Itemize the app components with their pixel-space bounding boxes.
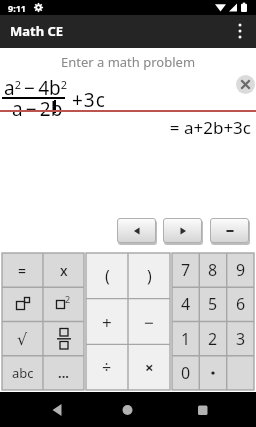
button[interactable]: 2 bbox=[43, 287, 84, 321]
staticText: 8 bbox=[208, 259, 218, 281]
button[interactable]: 9 bbox=[227, 253, 254, 287]
button[interactable]: 1 bbox=[172, 322, 199, 356]
button[interactable]: 7 bbox=[172, 253, 199, 287]
staticText: x bbox=[60, 261, 68, 280]
staticText: ... bbox=[58, 364, 69, 382]
staticText: 6 bbox=[236, 293, 246, 315]
staticText: − bbox=[144, 311, 154, 334]
button[interactable] bbox=[110, 392, 145, 427]
staticText: 5 bbox=[208, 293, 218, 315]
button[interactable]: + bbox=[86, 299, 128, 345]
staticText: 2 bbox=[208, 328, 218, 350]
button[interactable] bbox=[228, 19, 252, 43]
staticText: 9 bbox=[236, 259, 246, 281]
staticText: 4 bbox=[181, 293, 191, 315]
button[interactable] bbox=[210, 218, 249, 243]
button[interactable]: 2 bbox=[199, 322, 226, 356]
button[interactable]: 4 bbox=[172, 287, 199, 321]
staticText: 9:11 bbox=[8, 2, 26, 14]
staticText: 2 bbox=[65, 293, 71, 305]
staticText: a − 2b bbox=[12, 96, 63, 122]
button[interactable]: ... bbox=[43, 356, 84, 390]
staticText: 0 bbox=[181, 362, 191, 384]
button[interactable]: 8 bbox=[199, 253, 226, 287]
button[interactable] bbox=[2, 287, 43, 321]
button[interactable]: ( bbox=[86, 253, 128, 299]
staticText: × bbox=[145, 357, 154, 377]
staticText: = bbox=[18, 261, 27, 280]
staticText: +3c bbox=[72, 87, 106, 113]
staticText: ÷ bbox=[102, 356, 112, 378]
staticText: Enter a math problem bbox=[0, 53, 256, 71]
button[interactable]: 0 bbox=[172, 356, 199, 390]
staticText: a2 − 4b2 bbox=[4, 75, 67, 101]
button[interactable] bbox=[43, 322, 84, 356]
button[interactable] bbox=[163, 218, 202, 243]
button[interactable]: = bbox=[2, 253, 43, 287]
staticText: ) bbox=[147, 265, 152, 287]
staticText: = a+2b+3c bbox=[0, 116, 251, 139]
button[interactable]: 6 bbox=[227, 287, 254, 321]
button[interactable] bbox=[236, 75, 255, 94]
button[interactable]: 3 bbox=[227, 322, 254, 356]
button[interactable] bbox=[117, 218, 156, 243]
button[interactable]: × bbox=[128, 344, 170, 390]
staticText: 3 bbox=[236, 328, 246, 350]
button[interactable] bbox=[199, 356, 226, 390]
button[interactable] bbox=[227, 356, 254, 390]
staticText: Math CE bbox=[10, 22, 64, 40]
button[interactable]: − bbox=[128, 299, 170, 345]
staticText: 1 bbox=[181, 328, 191, 350]
button[interactable] bbox=[185, 392, 220, 427]
button[interactable]: x bbox=[43, 253, 84, 287]
staticText: 7 bbox=[181, 259, 191, 281]
button[interactable]: 5 bbox=[199, 287, 226, 321]
staticText: + bbox=[102, 311, 112, 334]
button[interactable]: abc bbox=[2, 356, 43, 390]
button[interactable] bbox=[40, 392, 75, 427]
button[interactable]: ÷ bbox=[86, 344, 128, 390]
button[interactable]: √ bbox=[2, 322, 43, 356]
button[interactable]: ) bbox=[128, 253, 170, 299]
staticText: ( bbox=[105, 265, 110, 287]
staticText: √ bbox=[17, 330, 28, 349]
staticText: abc bbox=[12, 364, 34, 382]
